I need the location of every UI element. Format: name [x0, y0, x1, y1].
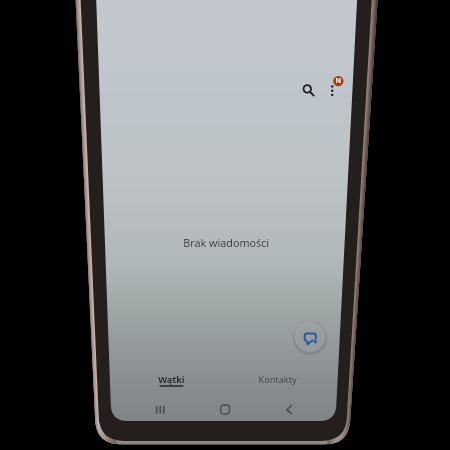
button[interactable]: Search [296, 78, 320, 102]
button[interactable]: Home [209, 398, 239, 420]
button[interactable] [140, 366, 230, 392]
button[interactable] [240, 366, 330, 392]
button[interactable]: Back [276, 398, 306, 420]
button[interactable]: Recents [146, 398, 176, 420]
button[interactable]: More options [326, 70, 352, 102]
button[interactable]: New conversation [293, 320, 327, 354]
